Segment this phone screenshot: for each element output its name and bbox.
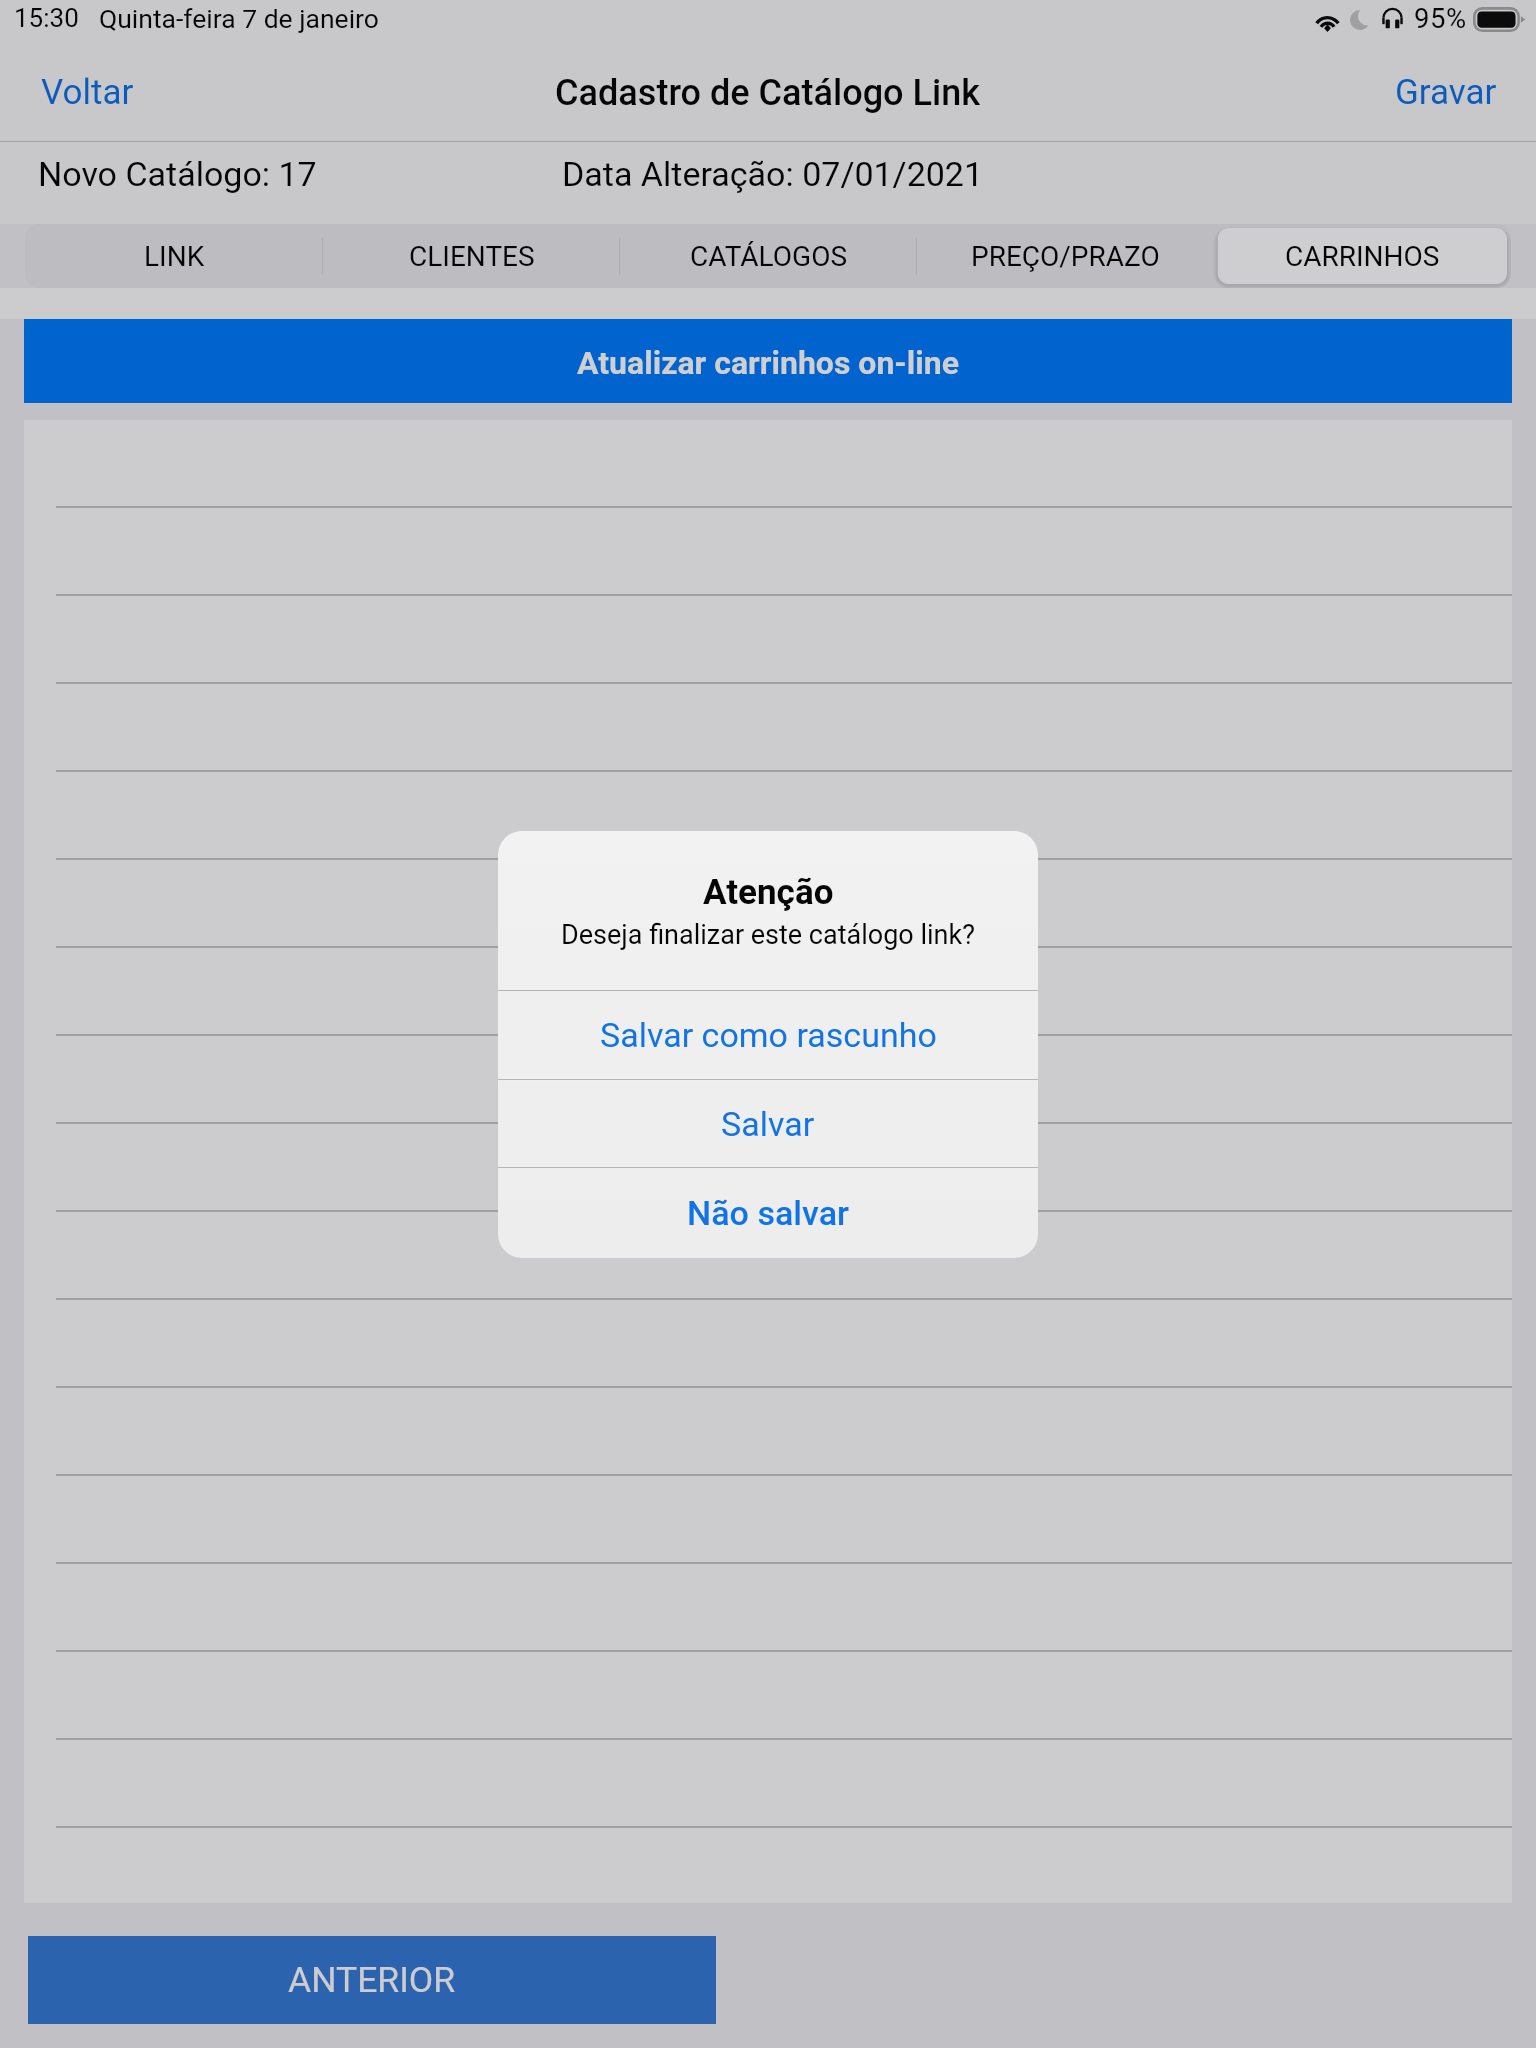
staticText: 15:30 bbox=[14, 3, 79, 33]
staticText: Cadastro de Catálogo Link bbox=[555, 72, 981, 114]
button[interactable]: CLIENTES bbox=[323, 224, 620, 288]
button[interactable]: PREÇO/PRAZO bbox=[917, 224, 1214, 288]
staticText: Deseja finalizar este catálogo link? bbox=[561, 919, 975, 951]
button[interactable]: Voltar bbox=[0, 56, 164, 129]
staticText: Quinta-feira 7 de janeiro bbox=[99, 3, 379, 34]
button[interactable]: CARRINHOS bbox=[1214, 224, 1511, 288]
staticText: Salvar como rascunho bbox=[600, 1015, 937, 1055]
button[interactable]: Gravar bbox=[1365, 56, 1536, 129]
button[interactable]: Salvar bbox=[498, 1080, 1038, 1167]
staticText: Atenção bbox=[703, 872, 834, 913]
button[interactable]: Salvar como rascunho bbox=[498, 991, 1038, 1079]
button[interactable]: LINK bbox=[25, 224, 323, 288]
staticText: PREÇO/PRAZO bbox=[971, 240, 1160, 273]
staticText: Atualizar carrinhos on-line bbox=[577, 344, 959, 382]
staticText: ANTERIOR bbox=[288, 1959, 456, 2001]
staticText: CATÁLOGOS bbox=[690, 240, 848, 273]
staticText: 95% bbox=[1414, 2, 1467, 34]
staticText: Salvar bbox=[721, 1104, 815, 1144]
button[interactable]: ANTERIOR bbox=[28, 1936, 716, 2024]
button[interactable]: Não salvar bbox=[498, 1168, 1038, 1258]
staticText: Não salvar bbox=[687, 1193, 850, 1233]
staticText: Data Alteração: 07/01/2021 bbox=[562, 154, 984, 194]
button[interactable]: CATÁLOGOS bbox=[620, 224, 917, 288]
staticText: CLIENTES bbox=[409, 240, 535, 273]
staticText: Novo Catálogo: 17 bbox=[38, 154, 317, 194]
button[interactable]: Atualizar carrinhos on-line bbox=[24, 319, 1512, 403]
staticText: Gravar bbox=[1395, 72, 1497, 113]
staticText: Voltar bbox=[41, 72, 134, 113]
staticText: LINK bbox=[144, 240, 205, 273]
staticText: CARRINHOS bbox=[1285, 240, 1440, 273]
